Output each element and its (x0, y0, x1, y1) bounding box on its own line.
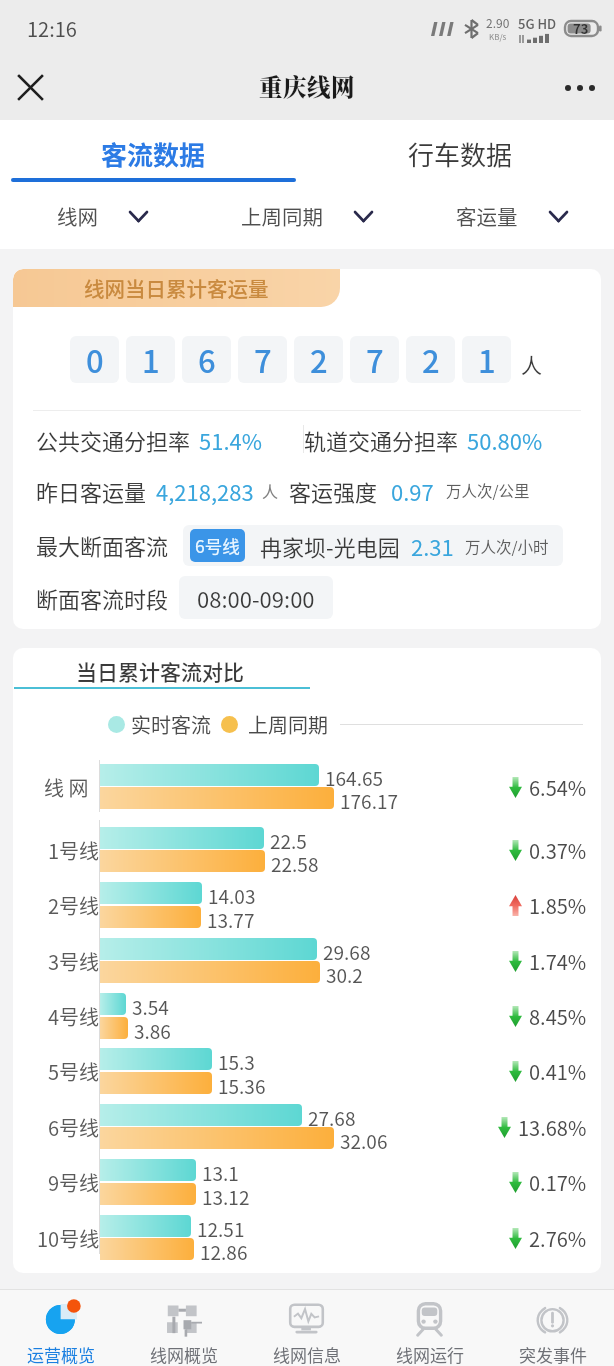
staticText: KB/s (489, 31, 507, 43)
staticText: 164.65 (325, 764, 384, 786)
staticText: 14.03 (208, 882, 256, 904)
staticText: 7 (254, 337, 272, 382)
staticText: 12.51 (197, 1215, 245, 1237)
staticText: 运营概览 (27, 1342, 95, 1366)
staticText: 客流数据 (101, 135, 206, 173)
staticText: 万人次/小时 (465, 535, 549, 557)
staticText: 176.17 (340, 787, 399, 809)
staticText: 冉家坝-光电园 (260, 530, 400, 562)
staticText: 人 (262, 479, 279, 502)
staticText: 22.5 (270, 827, 307, 849)
staticText: 人 (521, 349, 542, 379)
button[interactable]: More options (556, 64, 604, 112)
staticText: 3.54 (132, 993, 169, 1015)
button[interactable]: 客运量 (409, 182, 614, 249)
staticText: 1 (478, 337, 496, 382)
staticText: 6.54% (529, 773, 587, 802)
staticText: 1 (142, 337, 160, 382)
button[interactable]: Close (6, 64, 54, 112)
staticText: 30.2 (326, 961, 363, 983)
staticText: 3.86 (134, 1017, 171, 1039)
staticText: 73 (573, 19, 589, 38)
staticText: 15.36 (218, 1072, 266, 1094)
staticText: 实时客流 (131, 710, 211, 739)
staticText: 12:16 (27, 14, 77, 43)
staticText: 重庆线网 (259, 69, 355, 103)
staticText: 公共交通分担率 (36, 424, 191, 454)
staticText: 突发事件 (519, 1342, 587, 1366)
staticText: 当日累计客流对比 (76, 656, 244, 686)
staticText: 6 (198, 337, 216, 382)
staticText: 10号线 (37, 1224, 100, 1253)
staticText: 5号线 (48, 1057, 100, 1086)
staticText: 万人次/公里 (446, 479, 530, 501)
button[interactable]: 线网运行 (368, 1290, 491, 1366)
staticText: 22.58 (271, 850, 319, 872)
staticText: 15.3 (218, 1048, 255, 1070)
staticText: 上周同期 (241, 201, 323, 231)
staticText: 13.68% (518, 1113, 587, 1142)
staticText: 客运强度 (289, 475, 378, 505)
staticText: 32.06 (340, 1127, 388, 1149)
staticText: 线 网 (44, 773, 89, 802)
staticText: 2 (422, 337, 440, 382)
staticText: 51.4% (199, 424, 263, 454)
staticText: 0.17% (529, 1168, 587, 1197)
staticText: 4,218,283 (156, 475, 254, 505)
staticText: 上周同期 (248, 710, 328, 739)
staticText: 轨道交通分担率 (304, 424, 459, 454)
button[interactable]: 线网 (0, 182, 204, 249)
staticText: 7 (366, 337, 384, 382)
staticText: 线网运行 (396, 1342, 464, 1366)
staticText: 50.80% (467, 424, 543, 454)
button[interactable]: 行车数据 (307, 120, 614, 182)
staticText: 0.41% (529, 1057, 587, 1086)
staticText: 12.86 (200, 1238, 248, 1260)
staticText: 线网信息 (273, 1342, 341, 1366)
staticText: 13.12 (202, 1183, 250, 1205)
staticText: 1.85% (529, 891, 587, 920)
staticText: 2.31 (411, 530, 454, 562)
staticText: 9号线 (48, 1168, 100, 1197)
button[interactable]: 突发事件 (491, 1290, 614, 1366)
staticText: 0.37% (529, 836, 587, 865)
staticText: 线网概览 (150, 1342, 218, 1366)
staticText: 8.45% (529, 1002, 587, 1031)
staticText: 4号线 (48, 1002, 100, 1031)
staticText: 13.1 (202, 1159, 239, 1181)
staticText: 0.97 (391, 475, 434, 505)
staticText: 1.74% (529, 947, 587, 976)
staticText: 行车数据 (408, 135, 513, 173)
staticText: 2 (310, 337, 328, 382)
button[interactable]: 线网概览 (122, 1290, 245, 1366)
staticText: 线网 (57, 201, 98, 231)
staticText: 13.77 (207, 906, 255, 928)
staticText: 客运量 (456, 201, 518, 231)
staticText: 最大断面客流 (36, 529, 169, 561)
staticText: 6号线 (48, 1113, 100, 1142)
staticText: 27.68 (308, 1104, 356, 1126)
staticText: 2号线 (48, 891, 100, 920)
button[interactable]: 线网信息 (245, 1290, 368, 1366)
staticText: 3号线 (48, 947, 100, 976)
button[interactable]: 客流数据 (0, 120, 307, 182)
staticText: 2.90 (486, 14, 510, 31)
button[interactable]: 上周同期 (204, 182, 409, 249)
staticText: 线网当日累计客运量 (84, 273, 269, 303)
staticText: 0 (86, 337, 104, 382)
staticText: 6号线 (195, 533, 240, 558)
staticText: 1号线 (48, 836, 100, 865)
staticText: 断面客流时段 (36, 582, 169, 614)
staticText: 昨日客运量 (36, 475, 147, 505)
staticText: 08:00-09:00 (197, 582, 315, 614)
staticText: 29.68 (323, 938, 371, 960)
staticText: 2.76% (529, 1224, 587, 1253)
button[interactable]: 运营概览 (0, 1290, 122, 1366)
staticText: 5G HD (518, 14, 557, 33)
